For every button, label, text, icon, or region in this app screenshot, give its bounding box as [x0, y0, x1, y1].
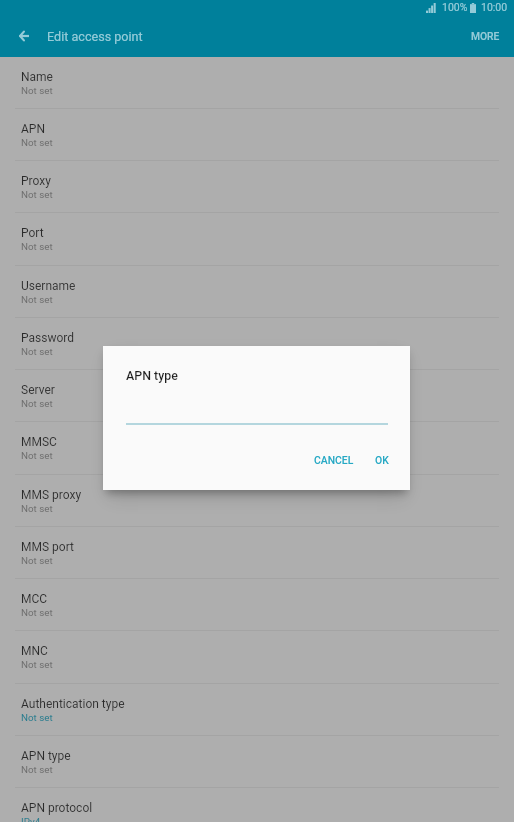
button[interactable]: Navigate up [0, 19, 46, 55]
staticText: APN type [21, 749, 71, 763]
staticText: Password [21, 331, 75, 345]
staticText: CANCEL [314, 454, 354, 466]
staticText: Not set [21, 555, 53, 566]
staticText: OK [375, 454, 389, 466]
staticText: Not set [21, 294, 53, 305]
staticText: Not set [21, 346, 53, 357]
staticText: APN protocol [21, 801, 93, 815]
staticText: Server [21, 383, 55, 397]
button[interactable]: MCC [0, 579, 514, 631]
staticText: Authentication type [21, 697, 125, 711]
staticText: MCC [21, 592, 48, 606]
staticText: Not set [21, 712, 53, 723]
staticText: Username [21, 279, 76, 293]
staticText: MORE [471, 30, 500, 42]
staticText: Not set [21, 241, 53, 252]
button[interactable]: APN protocol [0, 788, 514, 822]
button[interactable]: MMS proxy [0, 475, 514, 527]
button[interactable]: MMSC [0, 422, 514, 474]
button[interactable]: OK [365, 445, 399, 475]
staticText: Not set [21, 503, 53, 514]
button[interactable]: APN type [0, 736, 514, 788]
staticText: MMS port [21, 540, 74, 554]
staticText: Name [21, 70, 53, 84]
staticText: Not set [21, 398, 53, 409]
button[interactable]: MMS port [0, 527, 514, 579]
staticText: Not set [21, 659, 53, 670]
staticText: IPv4 [21, 816, 41, 822]
staticText: Not set [21, 764, 53, 775]
button[interactable]: Name [0, 57, 514, 109]
staticText: Not set [21, 137, 53, 148]
staticText: Not set [21, 450, 53, 461]
button[interactable]: Server [0, 370, 514, 422]
button[interactable]: Authentication type [0, 684, 514, 736]
staticText: Not set [21, 85, 53, 96]
staticText: Not set [21, 189, 53, 200]
button[interactable]: APN [0, 109, 514, 161]
staticText: Port [21, 226, 44, 240]
staticText: Edit access point [47, 29, 143, 44]
staticText: MMSC [21, 435, 57, 449]
button[interactable]: Proxy [0, 161, 514, 213]
button[interactable]: MORE [457, 22, 514, 52]
button[interactable]: Password [0, 318, 514, 370]
staticText: Proxy [21, 174, 51, 188]
button[interactable]: Port [0, 213, 514, 265]
staticText: MNC [21, 644, 48, 658]
staticText: Not set [21, 607, 53, 618]
staticText: 10:00 [481, 1, 508, 13]
button[interactable]: CANCEL [303, 445, 365, 475]
staticText: MMS proxy [21, 488, 82, 502]
staticText: APN [21, 122, 45, 136]
staticText: APN type [126, 368, 178, 383]
button[interactable]: Username [0, 266, 514, 318]
staticText: 100% [442, 1, 468, 13]
button[interactable]: MNC [0, 631, 514, 683]
